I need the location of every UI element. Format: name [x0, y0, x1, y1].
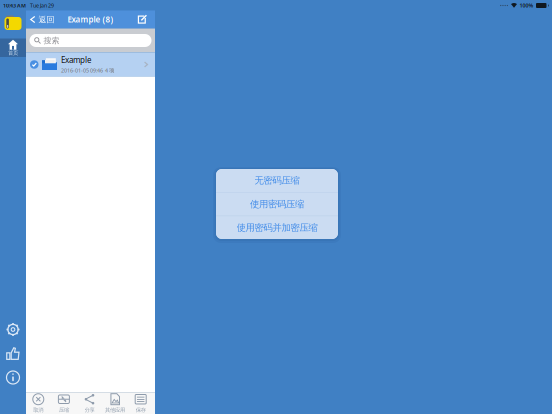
staticText: 其他应用 — [105, 407, 125, 413]
button[interactable]: 使用密码并加密压缩 — [216, 216, 338, 239]
button[interactable]: App — [0, 14, 26, 32]
button[interactable]: 其他应用 — [102, 393, 128, 413]
staticText: 压缩 — [59, 407, 69, 413]
button[interactable]: Example — [26, 52, 155, 76]
staticText: 使用密码并加密压缩 — [236, 222, 317, 233]
button[interactable]: Rate — [0, 343, 26, 363]
button[interactable]: Settings — [0, 319, 26, 339]
staticText: Example — [61, 55, 92, 65]
staticText: Tue Jan 29 — [30, 2, 54, 9]
staticText: 首页 — [8, 50, 18, 56]
button[interactable]: 使用密码压缩 — [216, 193, 338, 216]
staticText: 100% — [519, 2, 533, 9]
button[interactable]: 保存 — [128, 393, 153, 413]
staticText: 使用密码压缩 — [250, 198, 304, 210]
staticText: 搜索 — [43, 36, 59, 45]
button[interactable]: 分享 — [77, 393, 102, 413]
button[interactable]: 首页 — [0, 38, 26, 57]
staticText: 无密码压缩 — [254, 175, 299, 186]
button[interactable]: 搜索 — [29, 34, 151, 47]
staticText: 2016-01-05 09:46 4 项 — [61, 67, 114, 74]
button[interactable]: 压缩 — [51, 393, 77, 413]
staticText: 返回 — [38, 15, 54, 24]
button[interactable]: 无密码压缩 — [216, 169, 338, 192]
button[interactable]: Info — [0, 367, 26, 387]
button[interactable]: 取消 — [25, 393, 51, 413]
staticText: 10:43 AM — [3, 2, 26, 9]
staticText: 保存 — [136, 407, 146, 413]
button[interactable]: 返回 — [26, 10, 54, 28]
button[interactable]: Edit — [134, 11, 150, 28]
staticText: 取消 — [33, 407, 43, 413]
staticText: 分享 — [84, 407, 94, 413]
staticText: Example (8) — [67, 14, 113, 25]
